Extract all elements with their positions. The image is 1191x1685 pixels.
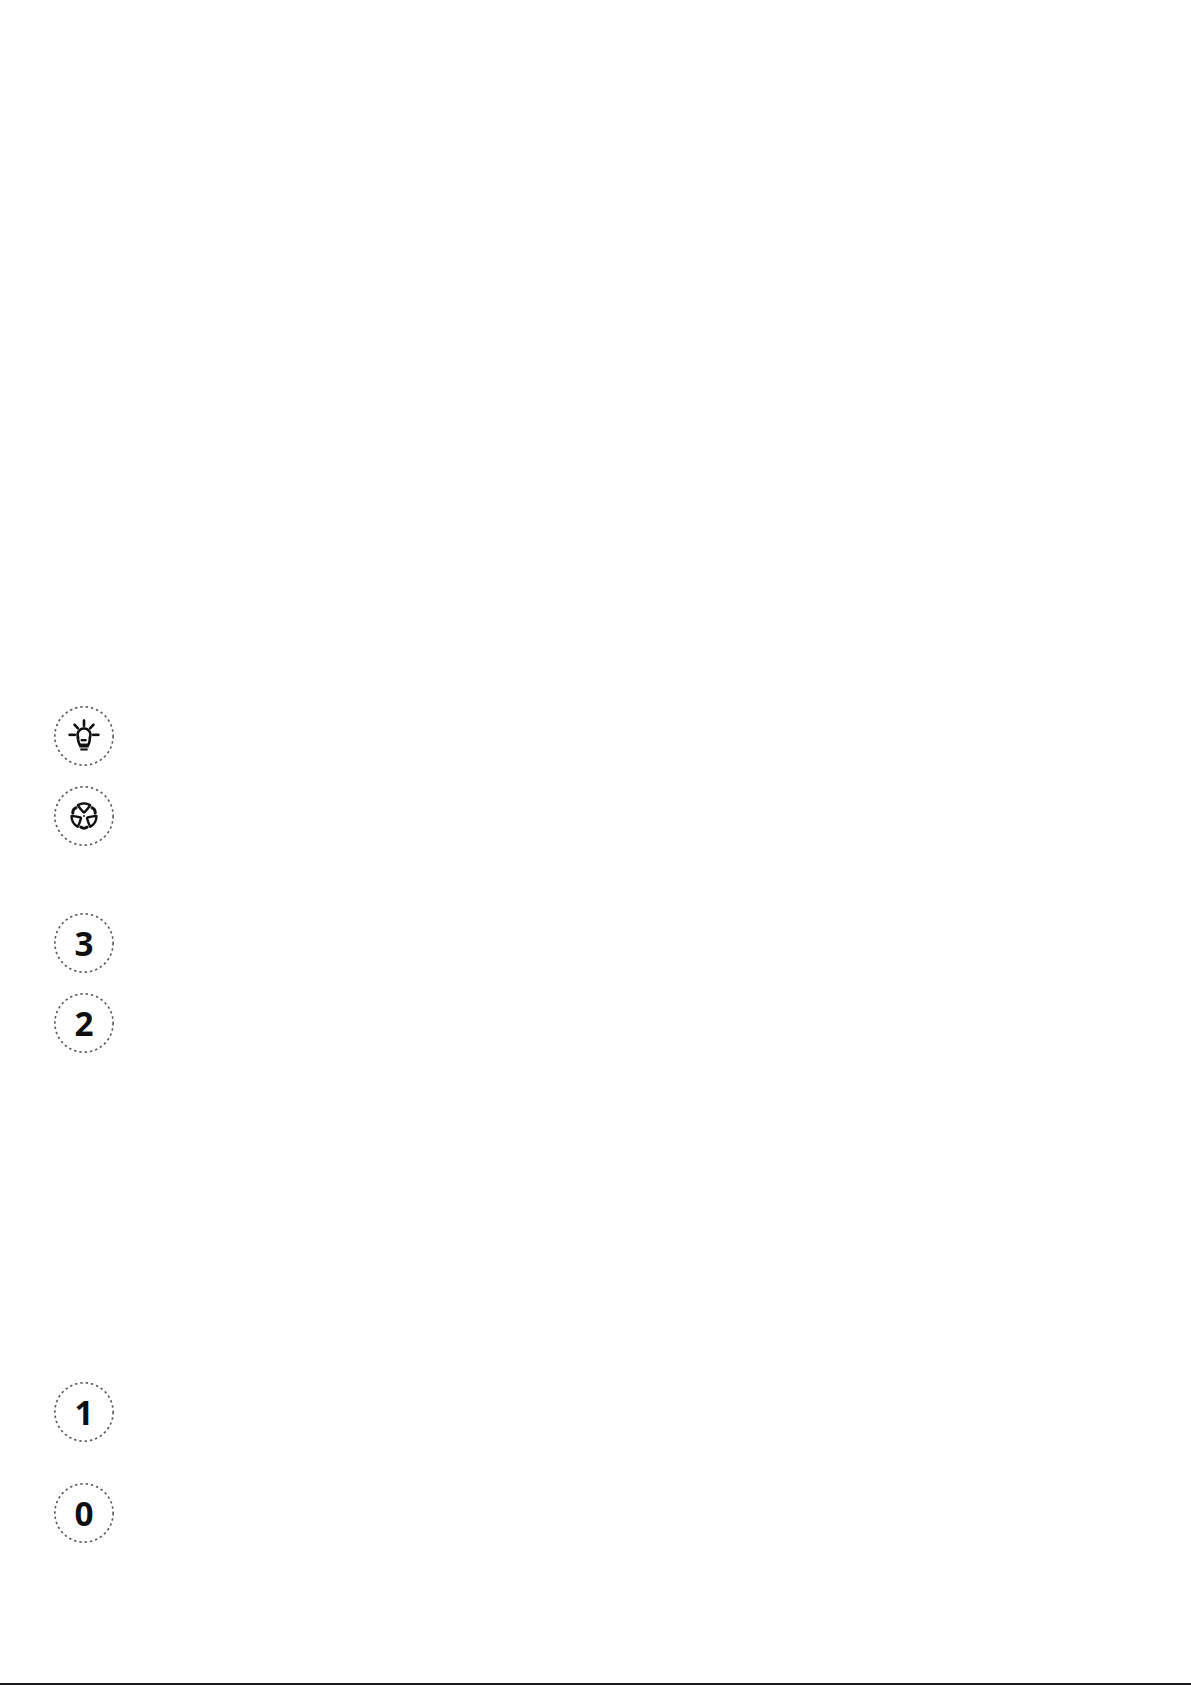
button[interactable]: Level 0 <box>54 1483 114 1543</box>
staticText: 3 <box>74 921 93 965</box>
staticText: 0 <box>74 1491 93 1535</box>
button[interactable]: Level 1 <box>54 1382 114 1442</box>
button[interactable]: Level 3 <box>54 913 114 973</box>
button[interactable]: Lights <box>54 706 114 766</box>
staticText: 2 <box>74 1001 93 1045</box>
button[interactable]: Level 2 <box>54 993 114 1053</box>
button[interactable]: Fan <box>54 786 114 846</box>
staticText: 1 <box>74 1390 93 1434</box>
